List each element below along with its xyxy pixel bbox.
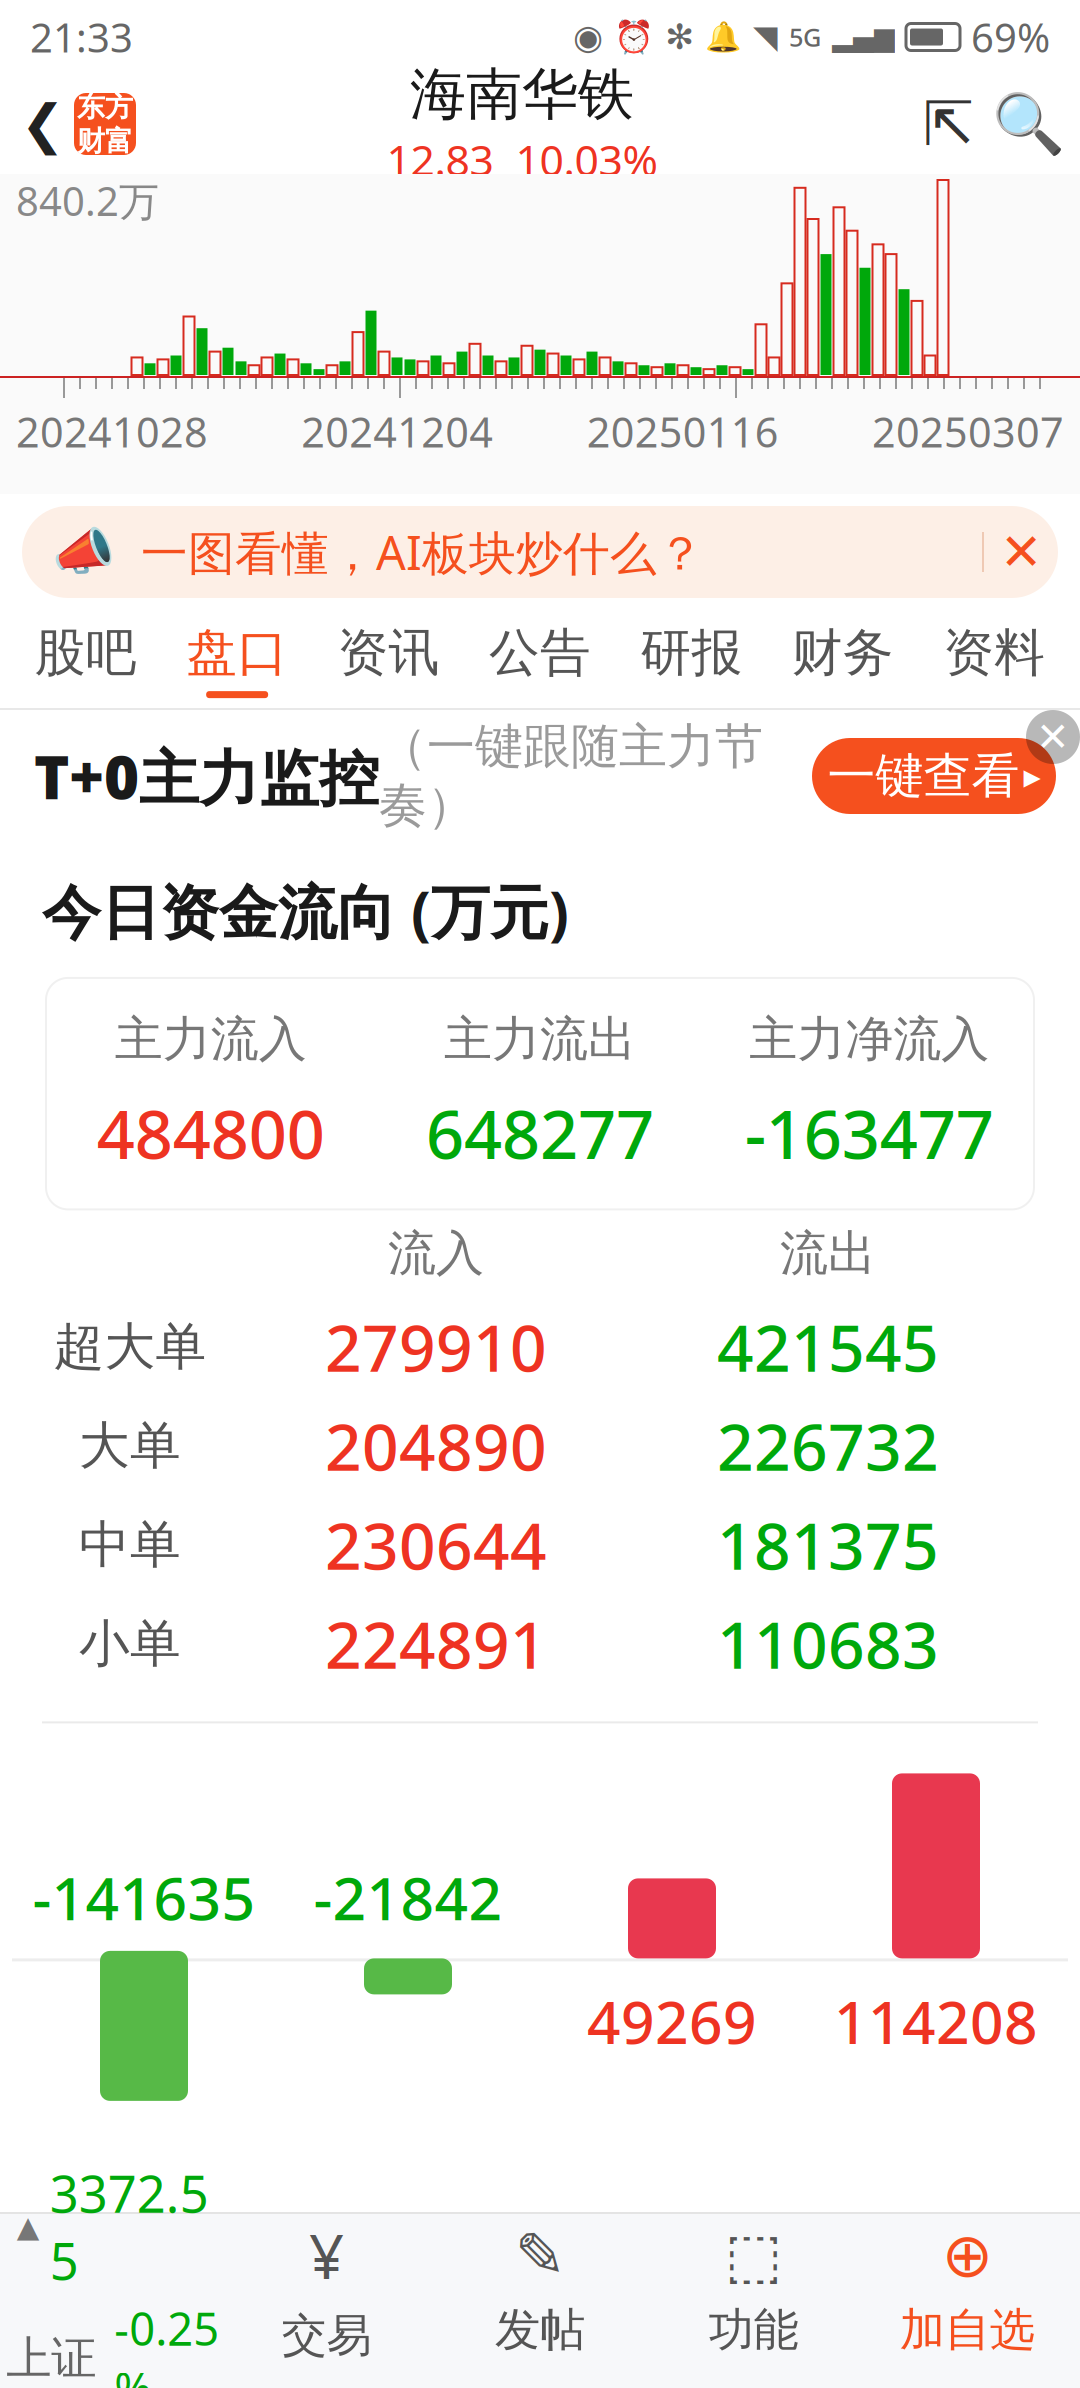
staticText: 主力流入: [115, 1010, 307, 1069]
staticText: 功能: [709, 2302, 799, 2358]
staticText: 盘口: [186, 622, 288, 684]
staticText: 421545: [717, 1304, 939, 1389]
staticText: 49269: [587, 1982, 757, 2060]
button[interactable]: 盘口: [161, 610, 313, 710]
staticText: 114208: [834, 1982, 1038, 2060]
staticText: 840.2万: [16, 174, 159, 227]
staticText: 20241028: [16, 404, 208, 459]
staticText: ✕: [1000, 523, 1042, 581]
staticText: 主力流出: [444, 1010, 636, 1069]
button[interactable]: Back: [12, 76, 74, 172]
button[interactable]: 📣: [22, 506, 982, 598]
staticText: 流出: [780, 1224, 876, 1283]
staticText: 研报: [640, 622, 742, 684]
button[interactable]: 股吧: [10, 610, 161, 710]
staticText: -21842: [313, 1858, 502, 1936]
button[interactable]: Share: [908, 76, 988, 172]
staticText: 资讯: [338, 622, 440, 684]
staticText: 279910: [325, 1304, 547, 1389]
button[interactable]: 资讯: [313, 610, 464, 710]
staticText: 一图看懂，AI板块炒什么？: [141, 521, 704, 583]
staticText: 财富: [77, 124, 133, 158]
staticText: 主力净流入: [749, 1010, 989, 1069]
staticText: 69%: [971, 10, 1050, 63]
staticText: 超大单: [53, 1316, 206, 1378]
staticText: ▸: [1023, 756, 1040, 796]
staticText: 📣: [52, 523, 115, 581]
staticText: 发帖: [495, 2302, 585, 2358]
staticText: 财务: [792, 622, 894, 684]
staticText: 12.83: [386, 131, 493, 188]
button[interactable]: 公告: [464, 610, 616, 710]
staticText: 484800: [97, 1089, 325, 1177]
staticText: ✕: [1036, 714, 1070, 760]
staticText: 110683: [717, 1601, 939, 1686]
staticText: 230644: [325, 1502, 547, 1587]
button[interactable]: ¥: [220, 2214, 433, 2364]
staticText: 一键查看: [827, 746, 1019, 805]
staticText: 海南华铁: [410, 60, 634, 129]
staticText: 20241204: [301, 404, 493, 459]
staticText: -0.25%: [114, 2298, 219, 2388]
staticText: 224891: [325, 1601, 547, 1686]
staticText: 648277: [426, 1089, 654, 1177]
staticText: 大单: [79, 1415, 181, 1477]
staticText: ✻: [665, 17, 694, 57]
staticText: 🔔: [705, 20, 742, 54]
staticText: 上证: [6, 2330, 96, 2386]
staticText: 20250307: [872, 404, 1064, 459]
staticText: 181375: [717, 1502, 939, 1587]
staticText: 股吧: [35, 622, 137, 684]
staticText: ¥: [309, 2214, 344, 2296]
staticText: 20250116: [587, 404, 779, 459]
staticText: 小单: [79, 1613, 181, 1675]
staticText: ◉: [573, 17, 603, 57]
staticText: ⬚: [725, 2220, 783, 2290]
button[interactable]: Close promotion: [1026, 710, 1080, 764]
staticText: 资料: [943, 622, 1045, 684]
button[interactable]: ✎: [433, 2214, 647, 2364]
button[interactable]: 财务: [767, 610, 918, 710]
staticText: ▂▄▆: [832, 22, 895, 52]
staticText: ▲: [17, 2210, 40, 2243]
button[interactable]: East Money home: [74, 93, 136, 155]
button[interactable]: ⊕: [860, 2214, 1074, 2364]
button[interactable]: ▲: [6, 2214, 220, 2364]
button[interactable]: ⬚: [647, 2214, 860, 2364]
staticText: 交易: [281, 2308, 371, 2364]
staticText: 公告: [489, 622, 591, 684]
staticText: ✎: [514, 2220, 565, 2290]
button[interactable]: Search: [988, 76, 1068, 172]
staticText: 21:33: [30, 10, 133, 63]
staticText: 226732: [717, 1403, 939, 1488]
staticText: 5G: [789, 20, 821, 54]
staticText: ⊕: [942, 2220, 993, 2290]
staticText: 流入: [388, 1224, 484, 1283]
staticText: -141635: [32, 1858, 255, 1936]
staticText: 204890: [325, 1403, 547, 1488]
button[interactable]: Close banner: [984, 506, 1058, 598]
staticText: 10.03%: [515, 131, 657, 188]
staticText: ❮: [20, 94, 65, 154]
staticText: ⏰: [614, 19, 654, 55]
staticText: T+0主力监控: [34, 736, 379, 816]
staticText: 中单: [79, 1514, 181, 1576]
button[interactable]: 研报: [616, 610, 767, 710]
staticText: -163477: [745, 1089, 994, 1177]
staticText: 东方: [77, 90, 133, 124]
staticText: 3372.55: [50, 2159, 209, 2294]
button[interactable]: 资料: [919, 610, 1070, 710]
staticText: ⇱: [922, 89, 973, 159]
button[interactable]: 一键查看: [812, 738, 1056, 814]
staticText: ◥: [753, 19, 778, 55]
staticText: 今日资金流向 (万元): [42, 872, 569, 950]
staticText: （一键跟随主力节奏）: [379, 717, 763, 835]
staticText: 🔍: [991, 90, 1064, 157]
staticText: 加自选: [900, 2302, 1035, 2358]
